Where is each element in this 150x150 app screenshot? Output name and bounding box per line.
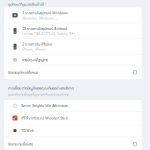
staticText: 2 รายการใน iPhone [22, 41, 52, 47]
staticText: Windows, Windows ... [22, 16, 58, 20]
staticText: 15 รายการในอุปกรณ์ Android [22, 26, 67, 31]
button[interactable]: 2 รายการใน iPhone [4, 39, 141, 54]
button[interactable]: จัดการอุปกรณ์ทั้งหมด [4, 66, 141, 79]
button[interactable]: rPFReinforced Wooden Stick [4, 112, 141, 124]
staticText: หาอุปกรณ์ที่สูญหาย [22, 57, 48, 62]
button[interactable]: 15 รายการในอุปกรณ์ Android [4, 23, 141, 39]
staticText: rPFReinforced Wooden Stick [21, 115, 68, 121]
button[interactable]: จัดการการเชื่อมต่อ [4, 137, 141, 150]
staticText: การเชื่อมต่อบัญชีของคุณกับแอปและบริการ [8, 85, 74, 91]
button[interactable]: 3 รายการในอุปกรณ์ Windows [4, 8, 141, 23]
button[interactable]: หาอุปกรณ์ที่สูญหาย [4, 55, 141, 65]
staticText: จัดการการเชื่อมต่อ [8, 142, 33, 147]
staticText: จัดการอุปกรณ์ทั้งหมด [8, 70, 38, 75]
button[interactable]: TDWeb [4, 125, 141, 137]
staticText: ดูและจัดการข้อมูลที่คุณแชร์กับแอปและบริก… [8, 92, 69, 97]
staticText: Lenovo TAB-X77PLUS, Galaxy S9+, ... [22, 32, 80, 36]
staticText: Seven Knights Idle Adventure [21, 103, 68, 108]
button[interactable]: Seven Knights Idle Adventure [4, 100, 141, 111]
staticText: iPhone, iPhone [22, 47, 46, 52]
staticText: TDWeb [21, 128, 34, 133]
staticText: อุปกรณ์ที่คุณลงชื่อเข้าใช้ [8, 1, 44, 7]
staticText: 3 รายการในอุปกรณ์ Windows [22, 10, 68, 15]
